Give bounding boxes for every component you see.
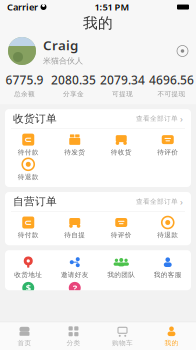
staticText: 收货地址 bbox=[14, 271, 42, 279]
button[interactable]: 我的团队 bbox=[98, 256, 144, 279]
button[interactable]: 待收货 bbox=[98, 134, 144, 156]
button[interactable]: 购物车 bbox=[98, 325, 147, 347]
staticText: › bbox=[178, 195, 183, 208]
staticText: 自营订单 bbox=[13, 195, 57, 208]
button[interactable]: 待评价 bbox=[144, 134, 191, 156]
button[interactable]: 收货订单 bbox=[5, 109, 191, 128]
button[interactable]: 自营订单 bbox=[5, 192, 191, 211]
button[interactable]: 首页 bbox=[0, 325, 49, 347]
staticText: 待发货 bbox=[64, 148, 85, 156]
staticText: 2079.34 bbox=[100, 72, 145, 88]
staticText: ⊂ bbox=[24, 134, 32, 145]
button[interactable]: 2080.35 bbox=[49, 72, 98, 98]
staticText: Carrier bbox=[7, 1, 38, 13]
staticText: 分类 bbox=[66, 339, 80, 347]
staticText: 我的客服 bbox=[154, 271, 182, 279]
staticText: 2080.35 bbox=[51, 72, 96, 88]
button[interactable]: 邀请好友 bbox=[51, 256, 98, 279]
staticText: Craig bbox=[43, 36, 78, 54]
staticText: 查看全部订单 bbox=[136, 114, 178, 123]
staticText: 我的 bbox=[164, 339, 178, 347]
staticText: 待付款 bbox=[18, 148, 39, 156]
button[interactable]: 我的客服 bbox=[144, 256, 191, 279]
staticText: 待评价 bbox=[111, 231, 132, 239]
staticText: 6775.9 bbox=[5, 72, 43, 88]
button[interactable]: 4696.56 bbox=[147, 72, 196, 98]
staticText: 购物车 bbox=[112, 339, 133, 347]
staticText: 4696.56 bbox=[149, 72, 194, 88]
button[interactable]: 我的 bbox=[147, 325, 196, 347]
staticText: 我的团队 bbox=[107, 271, 135, 279]
staticText: 首页 bbox=[17, 339, 31, 347]
button[interactable]: 待发货 bbox=[51, 134, 98, 156]
staticText: $ bbox=[26, 282, 31, 294]
staticText: 收货订单 bbox=[13, 112, 57, 125]
staticText: 1:51 PM bbox=[94, 1, 129, 13]
button[interactable]: 待退款 bbox=[5, 158, 51, 181]
button[interactable]: 2079.34 bbox=[98, 72, 147, 98]
button[interactable]: 待退款 bbox=[144, 216, 191, 239]
button[interactable]: 分类 bbox=[49, 325, 98, 347]
button[interactable]: Craig bbox=[0, 32, 196, 70]
staticText: 我的 bbox=[83, 14, 113, 32]
staticText: 待付款 bbox=[18, 231, 39, 239]
staticText: 待退款 bbox=[18, 173, 39, 181]
staticText: 可提现 bbox=[112, 90, 133, 98]
staticText: 总余额 bbox=[14, 90, 35, 98]
button[interactable]: money bbox=[5, 282, 51, 294]
button[interactable]: 待付款 bbox=[5, 216, 51, 239]
button[interactable]: help bbox=[51, 282, 98, 294]
button[interactable]: 待评价 bbox=[98, 216, 144, 239]
button[interactable]: 6775.9 bbox=[0, 72, 49, 98]
staticText: 待评价 bbox=[157, 148, 178, 156]
button[interactable]: 收货地址 bbox=[5, 256, 51, 279]
staticText: 分享金 bbox=[63, 90, 84, 98]
button[interactable]: 待自提 bbox=[51, 216, 98, 239]
staticText: 不可提现 bbox=[157, 90, 185, 98]
staticText: 待自提 bbox=[64, 231, 85, 239]
staticText: 查看全部订单 bbox=[136, 197, 178, 206]
staticText: 待退款 bbox=[157, 231, 178, 239]
staticText: 待收货 bbox=[111, 148, 132, 156]
staticText: ? bbox=[73, 282, 77, 294]
staticText: › bbox=[178, 112, 183, 125]
button[interactable]: 设置 bbox=[177, 45, 188, 56]
button[interactable]: 待付款 bbox=[5, 134, 51, 156]
staticText: ⊂ bbox=[24, 217, 32, 228]
staticText: 邀请好友 bbox=[61, 271, 89, 279]
staticText: 米猫合伙人 bbox=[43, 56, 83, 66]
